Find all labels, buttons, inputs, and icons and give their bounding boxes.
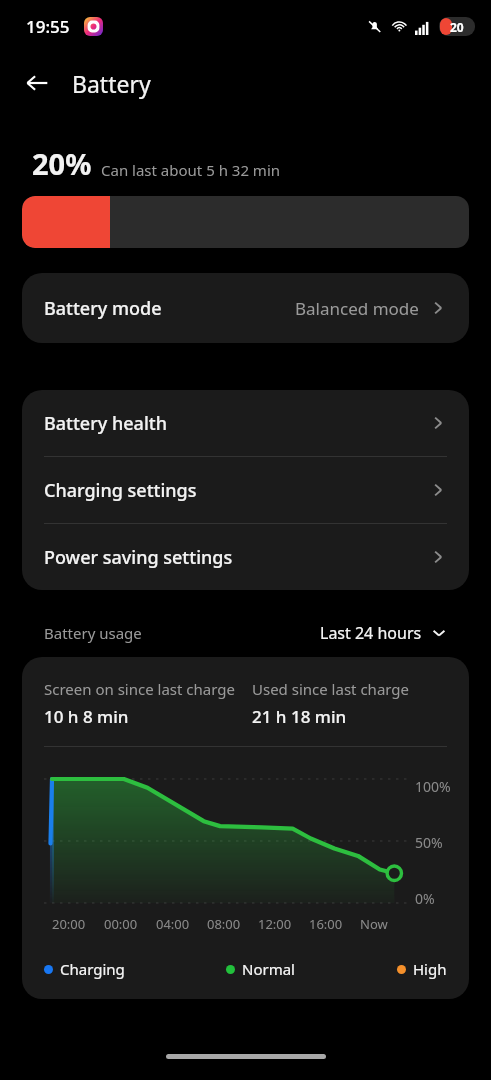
staticText: Battery health	[44, 411, 167, 436]
staticText: 12:00	[258, 915, 292, 933]
staticText: Charging	[60, 959, 125, 979]
staticText: 20%	[32, 144, 92, 183]
staticText: 16:00	[309, 915, 343, 933]
staticText: 100%	[415, 777, 451, 793]
button[interactable]: Charging settings	[22, 457, 469, 523]
staticText: 20:00	[52, 915, 86, 933]
staticText: Power saving settings	[44, 545, 233, 570]
staticText: Battery mode	[44, 296, 162, 321]
staticText: Last 24 hours	[320, 622, 422, 644]
staticText: 19:55	[26, 15, 70, 38]
staticText: 20	[450, 19, 464, 35]
button[interactable]: Last 24 hours	[320, 622, 447, 644]
staticText: Battery	[72, 68, 151, 99]
staticText: Balanced mode	[295, 297, 419, 320]
staticText: High	[413, 959, 447, 979]
staticText: Charging settings	[44, 478, 197, 503]
staticText: 10 h 8 min	[44, 705, 129, 728]
staticText: 50%	[415, 833, 443, 849]
staticText: 00:00	[104, 915, 138, 933]
button[interactable]: Back	[14, 60, 60, 106]
staticText: 08:00	[207, 915, 241, 933]
staticText: 0%	[415, 889, 435, 905]
button[interactable]: Power saving settings	[22, 524, 469, 590]
button[interactable]: Battery mode	[22, 273, 469, 343]
staticText: 21 h 18 min	[252, 705, 347, 728]
staticText: Can last about 5 h 32 min	[101, 160, 281, 180]
button[interactable]: Battery health	[22, 390, 469, 456]
staticText: Normal	[242, 959, 295, 979]
staticText: Now	[360, 915, 388, 933]
staticText: Screen on since last charge	[44, 679, 235, 699]
staticText: 04:00	[156, 915, 190, 933]
staticText: Battery usage	[44, 623, 142, 643]
staticText: Used since last charge	[252, 679, 410, 699]
